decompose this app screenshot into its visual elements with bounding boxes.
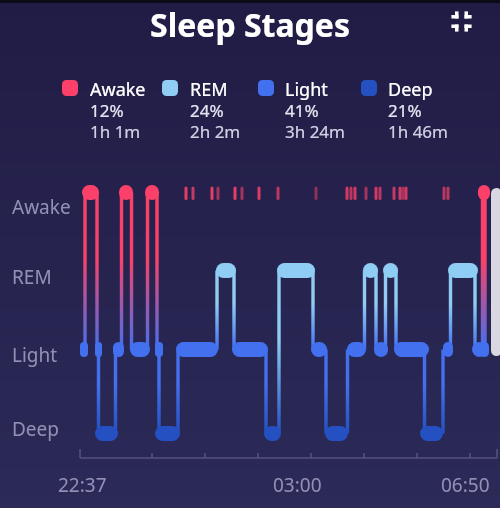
staticText: Deep <box>12 416 59 442</box>
staticText: REM <box>12 264 52 290</box>
button[interactable] <box>446 6 476 36</box>
staticText: Deep <box>388 77 433 102</box>
staticText: 1h 1m <box>90 120 141 143</box>
staticText: 41% <box>285 99 319 122</box>
staticText: 06:50 <box>441 472 490 498</box>
staticText: 03:00 <box>273 472 322 498</box>
staticText: REM <box>190 77 228 102</box>
staticText: 3h 24m <box>285 120 345 143</box>
staticText: 22:37 <box>58 472 107 498</box>
staticText: Awake <box>12 194 71 220</box>
staticText: 2h 2m <box>190 120 241 143</box>
staticText: 24% <box>190 99 224 122</box>
staticText: Awake <box>90 77 146 102</box>
staticText: 1h 46m <box>388 120 448 143</box>
staticText: Light <box>285 77 328 102</box>
staticText: 12% <box>90 99 124 122</box>
staticText: Sleep Stages <box>150 3 351 47</box>
staticText: 21% <box>388 99 422 122</box>
staticText: Light <box>12 342 58 368</box>
